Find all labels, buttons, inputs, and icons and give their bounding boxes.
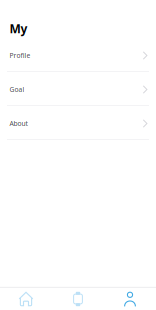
button[interactable]: About bbox=[0, 106, 156, 140]
staticText: Goal bbox=[9, 85, 24, 94]
button[interactable]: Goal bbox=[0, 72, 156, 106]
button[interactable]: Profile bbox=[0, 38, 156, 72]
staticText: My bbox=[9, 21, 27, 36]
button[interactable]: Device bbox=[52, 288, 104, 310]
staticText: About bbox=[9, 119, 27, 128]
button[interactable]: Home bbox=[0, 288, 52, 310]
staticText: Profile bbox=[9, 51, 30, 60]
button[interactable]: My bbox=[104, 288, 156, 310]
